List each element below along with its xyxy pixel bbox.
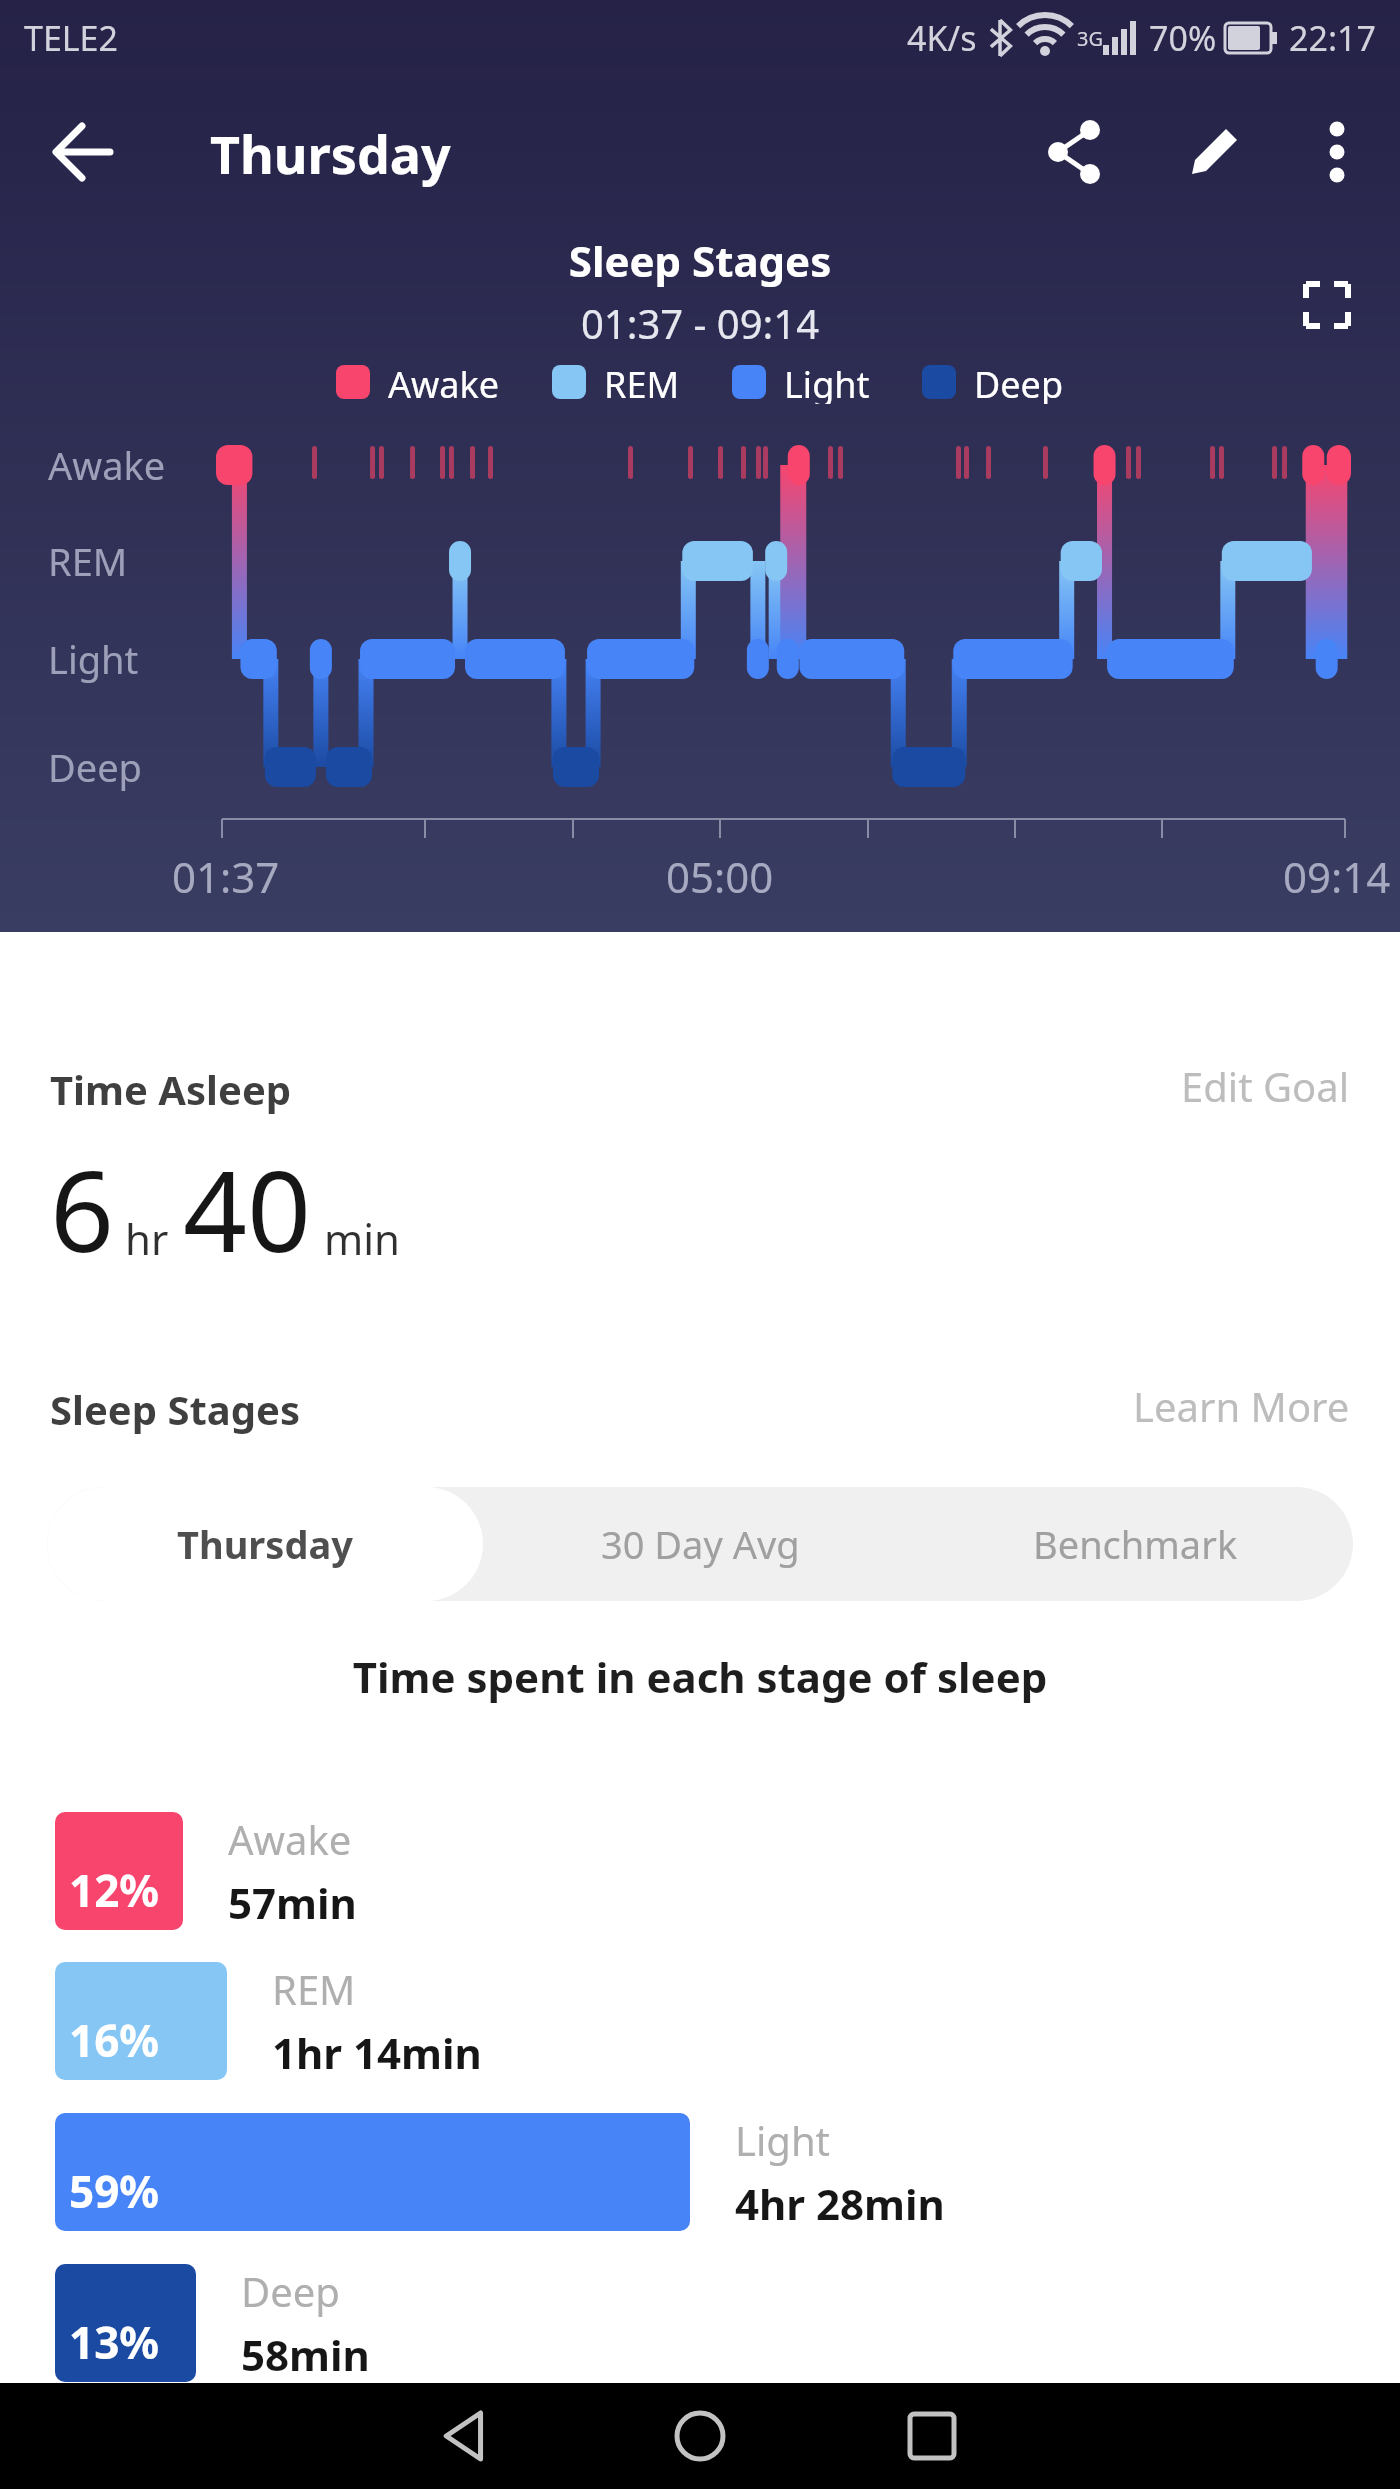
staticText: Deep bbox=[241, 2264, 340, 2318]
button[interactable] bbox=[1040, 116, 1112, 188]
staticText: REM bbox=[48, 535, 128, 587]
staticText: Thursday bbox=[177, 1518, 353, 1570]
button[interactable] bbox=[1178, 116, 1250, 188]
staticText: 3G bbox=[1077, 25, 1103, 52]
button[interactable] bbox=[1304, 116, 1370, 182]
staticText: Time spent in each stage of sleep bbox=[0, 1648, 1400, 1705]
staticText: Sleep Stages bbox=[50, 1382, 300, 1436]
staticText: REM bbox=[272, 1962, 356, 2016]
staticText: Sleep Stages bbox=[0, 232, 1400, 289]
staticText: Light bbox=[784, 360, 870, 404]
staticText: Light bbox=[48, 633, 139, 685]
staticText: Benchmark bbox=[1033, 1518, 1238, 1570]
staticText: 13% bbox=[69, 2312, 160, 2372]
staticText: 1hr 14min bbox=[272, 2024, 482, 2080]
staticText: Awake bbox=[388, 360, 500, 404]
staticText: 70% bbox=[1149, 15, 1217, 61]
button[interactable] bbox=[1303, 281, 1351, 329]
button[interactable]: Edit Goal bbox=[1150, 1054, 1360, 1118]
staticText: TELE2 bbox=[24, 15, 118, 61]
staticText: REM bbox=[604, 360, 680, 404]
staticText: Thursday bbox=[210, 118, 451, 189]
staticText: Light bbox=[735, 2113, 831, 2167]
staticText: Awake bbox=[228, 1812, 352, 1866]
staticText: Awake bbox=[48, 439, 166, 491]
staticText: Edit Goal bbox=[1181, 1059, 1350, 1113]
staticText: 22:17 bbox=[1289, 15, 1376, 61]
staticText: Deep bbox=[48, 741, 142, 793]
staticText: 59% bbox=[69, 2161, 160, 2221]
button[interactable]: 30 Day Avg bbox=[483, 1487, 918, 1601]
staticText: 57min bbox=[228, 1874, 357, 1930]
staticText: 01:37 bbox=[172, 848, 280, 905]
staticText: 6 bbox=[50, 1132, 115, 1285]
staticText: 12% bbox=[69, 1860, 160, 1920]
staticText: 58min bbox=[241, 2326, 370, 2382]
button[interactable] bbox=[440, 2410, 492, 2462]
staticText: Time Asleep bbox=[50, 1062, 292, 1116]
staticText: 4hr 28min bbox=[735, 2175, 945, 2231]
staticText: 16% bbox=[69, 2010, 160, 2070]
button[interactable] bbox=[906, 2410, 958, 2462]
staticText: Learn More bbox=[1133, 1379, 1350, 1433]
staticText: 05:00 bbox=[666, 848, 774, 905]
staticText: 40 bbox=[183, 1132, 312, 1285]
button[interactable]: Thursday bbox=[47, 1487, 483, 1601]
staticText: 01:37 - 09:14 bbox=[0, 296, 1400, 350]
button[interactable]: Learn More bbox=[1100, 1374, 1360, 1438]
staticText: 09:14 bbox=[1283, 848, 1391, 905]
staticText: 4K/s bbox=[907, 15, 977, 61]
button[interactable]: Benchmark bbox=[918, 1487, 1353, 1601]
staticText: hr bbox=[125, 1210, 169, 1267]
staticText: min bbox=[324, 1210, 401, 1267]
button[interactable] bbox=[674, 2410, 726, 2462]
staticText: 30 Day Avg bbox=[601, 1518, 800, 1570]
button[interactable] bbox=[48, 116, 120, 188]
staticText: Deep bbox=[974, 360, 1064, 404]
